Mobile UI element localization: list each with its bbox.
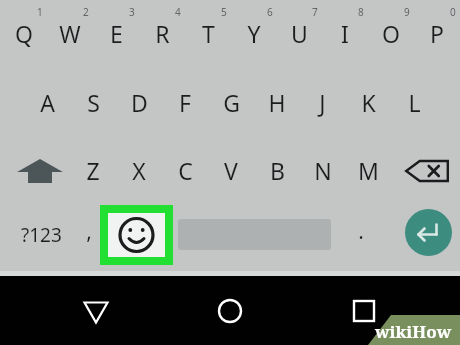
button[interactable]: F	[163, 76, 207, 128]
staticText: Q	[15, 18, 33, 49]
staticText: Y	[247, 18, 261, 49]
button[interactable]: Z	[71, 144, 115, 196]
button[interactable]: S	[71, 76, 115, 128]
button[interactable]: C	[163, 144, 207, 196]
button[interactable]: Shift	[14, 146, 66, 196]
button[interactable]: G	[209, 76, 253, 128]
staticText: T	[202, 18, 215, 49]
staticText: B	[270, 155, 285, 186]
staticText: 2	[83, 5, 89, 19]
staticText: ,	[86, 217, 92, 246]
staticText: J	[319, 87, 326, 118]
button[interactable]: W	[48, 7, 92, 59]
staticText: G	[223, 87, 240, 118]
button[interactable]: Home	[204, 288, 256, 334]
staticText: X	[132, 155, 146, 186]
button[interactable]: J	[300, 76, 344, 128]
button[interactable]: V	[209, 144, 253, 196]
staticText: Z	[86, 155, 100, 186]
button[interactable]: U	[277, 7, 321, 59]
staticText: U	[291, 18, 308, 49]
button[interactable]: Back	[70, 288, 122, 334]
button[interactable]: Q	[2, 7, 46, 59]
staticText: D	[131, 87, 148, 118]
button[interactable]: Backspace	[401, 146, 453, 196]
button[interactable]: R	[140, 7, 184, 59]
button[interactable]: Comma	[67, 205, 111, 257]
staticText: .	[358, 217, 364, 246]
button[interactable]: Y	[232, 7, 276, 59]
staticText: R	[155, 18, 170, 49]
button[interactable]: Emoji key	[100, 205, 173, 265]
staticText: 1	[37, 5, 43, 19]
staticText: O	[382, 18, 400, 49]
staticText: ?123	[21, 222, 62, 248]
button[interactable]: P	[415, 7, 459, 59]
button[interactable]: M	[346, 144, 390, 196]
button[interactable]: E	[94, 7, 138, 59]
staticText: C	[178, 155, 193, 186]
button[interactable]: Period	[339, 205, 383, 257]
button[interactable]: K	[346, 76, 390, 128]
staticText: 9	[404, 5, 410, 19]
staticText: 7	[312, 5, 318, 19]
button[interactable]: B	[255, 144, 299, 196]
button[interactable]: Recent apps	[338, 288, 390, 334]
button[interactable]: H	[255, 76, 299, 128]
button[interactable]: L	[392, 76, 436, 128]
staticText: wikiHow	[375, 320, 452, 343]
staticText: 0	[450, 5, 456, 19]
button[interactable]: ?123	[8, 212, 74, 258]
button[interactable]: I	[323, 7, 367, 59]
staticText: 5	[221, 5, 227, 19]
staticText: S	[87, 87, 100, 118]
staticText: P	[430, 18, 444, 49]
button[interactable]: O	[369, 7, 413, 59]
button[interactable]: N	[301, 144, 345, 196]
staticText: F	[179, 87, 191, 118]
staticText: 6	[267, 5, 273, 19]
button[interactable]: D	[117, 76, 161, 128]
staticText: A	[40, 87, 55, 118]
staticText: V	[224, 155, 238, 186]
button[interactable]: Enter	[405, 209, 452, 256]
staticText: I	[341, 18, 349, 49]
staticText: 8	[358, 5, 364, 19]
staticText: M	[358, 155, 379, 186]
staticText: L	[408, 87, 421, 118]
button[interactable]: T	[186, 7, 230, 59]
staticText: K	[361, 87, 376, 118]
staticText: H	[268, 87, 286, 118]
staticText: 3	[129, 5, 135, 19]
button[interactable]: A	[25, 76, 69, 128]
button[interactable]: X	[117, 144, 161, 196]
staticText: 4	[175, 5, 181, 19]
staticText: N	[314, 155, 332, 186]
staticText: W	[59, 18, 81, 49]
staticText: E	[110, 18, 123, 49]
